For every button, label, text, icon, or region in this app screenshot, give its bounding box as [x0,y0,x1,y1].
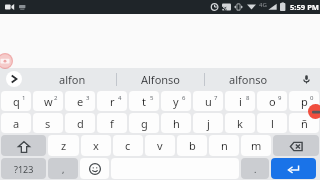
staticText: f [110,116,114,131]
button[interactable]: f [97,113,127,133]
button[interactable]: Alfonso [117,68,204,90]
button[interactable]: alfonso [205,68,292,90]
staticText: p [301,94,308,109]
staticText: x [93,138,99,153]
staticText: v [157,138,163,153]
button[interactable]: Voice input [292,68,320,90]
button[interactable]: Backspace [273,135,319,156]
button[interactable]: alfon [28,68,116,90]
button[interactable]: u [193,91,223,111]
button[interactable]: . [241,158,269,179]
staticText: , [62,163,65,175]
staticText: 5:59 PM [290,2,320,12]
staticText: 4G [259,1,267,9]
button[interactable]: w [33,91,63,111]
button[interactable]: k [225,113,255,133]
button[interactable]: Floating app bubble [308,104,320,119]
staticText: z [61,138,67,153]
button[interactable]: s [33,113,63,133]
staticText: 9 [278,94,282,102]
staticText: 1 [22,94,26,102]
button[interactable]: y [161,91,191,111]
button[interactable]: h [161,113,191,133]
button[interactable]: m [241,135,271,156]
staticText: o [269,94,276,109]
staticText: c [125,138,131,153]
button[interactable]: p [289,91,319,111]
staticText: d [77,116,84,131]
staticText: s [45,116,51,131]
staticText: a [13,116,20,131]
staticText: m [251,138,262,153]
button[interactable]: Screen recorder [0,53,13,69]
staticText: n [221,138,228,153]
staticText: 5 [150,94,154,102]
button[interactable]: t [129,91,159,111]
button[interactable]: Emoji [80,158,109,179]
staticText: 0 [310,94,314,102]
button[interactable]: z [48,135,79,156]
button[interactable]: v [145,135,175,156]
staticText: k [237,116,243,131]
button[interactable]: , [48,158,78,179]
staticText: b [189,138,196,153]
button[interactable]: a [1,113,31,133]
staticText: g [141,116,148,131]
button[interactable]: d [65,113,95,133]
staticText: . [254,163,257,175]
button[interactable]: o [257,91,287,111]
staticText: 6 [182,94,186,102]
button[interactable]: r [97,91,127,111]
staticText: 4 [118,94,122,102]
staticText: i [239,94,242,109]
staticText: r [110,94,115,109]
staticText: u [205,94,212,109]
staticText: ?123 [14,163,34,175]
staticText: w [44,94,53,109]
staticText: 3 [86,94,90,102]
staticText: t [142,94,146,109]
staticText: l [271,116,274,131]
staticText: e [77,94,84,109]
staticText: alfon [59,72,86,87]
staticText: Alfonso [141,72,181,87]
staticText: ñ [301,116,308,131]
staticText: alfonso [229,72,268,87]
staticText: 8 [246,94,250,102]
staticText: h [173,116,180,131]
button[interactable]: c [113,135,143,156]
button[interactable]: Shift [1,135,46,156]
button[interactable]: q [1,91,31,111]
staticText: 7 [214,94,218,102]
staticText: y [173,94,179,109]
button[interactable]: l [257,113,287,133]
staticText: j [207,116,210,131]
button[interactable]: x [81,135,111,156]
button[interactable]: j [193,113,223,133]
button[interactable]: ?123 [1,158,46,179]
button[interactable]: i [225,91,255,111]
button[interactable]: e [65,91,95,111]
button[interactable]: g [129,113,159,133]
staticText: 2 [54,94,58,102]
staticText: q [13,94,20,109]
button[interactable]: ñ [289,113,319,133]
button[interactable]: More suggestions [6,71,22,87]
button[interactable]: b [177,135,207,156]
button[interactable]: n [209,135,239,156]
button[interactable]: Enter [271,158,316,179]
